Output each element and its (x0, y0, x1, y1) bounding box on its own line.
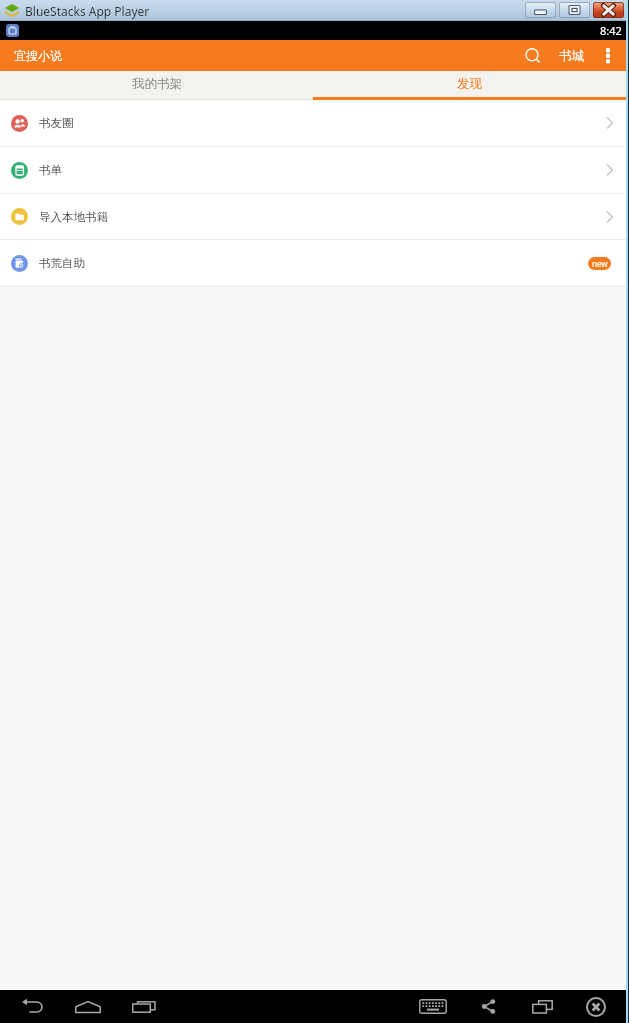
button[interactable] (10, 990, 54, 1023)
button[interactable]: 书荒自助 (0, 240, 626, 287)
button[interactable]: 书友圈 (0, 100, 626, 147)
button[interactable] (412, 990, 454, 1023)
button[interactable] (66, 990, 110, 1023)
button[interactable]: 发现 (313, 71, 626, 97)
button[interactable]: 书单 (0, 147, 626, 194)
staticText: 书友圈 (39, 116, 74, 130)
staticText: new (592, 258, 608, 269)
staticText: 书城 (559, 48, 584, 64)
button[interactable] (522, 990, 562, 1023)
button[interactable] (517, 40, 549, 71)
staticText: 我的书架 (132, 76, 182, 92)
staticText: BlueStacks App Player (25, 3, 150, 19)
staticText: 导入本地书籍 (39, 210, 108, 224)
button[interactable] (590, 40, 626, 71)
staticText: 宜搜小说 (14, 48, 62, 63)
button[interactable] (559, 2, 590, 18)
button[interactable] (576, 990, 616, 1023)
button[interactable] (122, 990, 166, 1023)
staticText: 书荒自助 (39, 256, 85, 270)
staticText: 8:42 (600, 23, 622, 38)
button[interactable]: 我的书架 (0, 71, 313, 97)
staticText: 书单 (39, 163, 62, 177)
button[interactable] (525, 2, 556, 18)
button[interactable]: 书城 (549, 40, 590, 71)
button[interactable]: 导入本地书籍 (0, 194, 626, 240)
button[interactable] (593, 2, 624, 18)
button[interactable] (468, 990, 508, 1023)
staticText: 发现 (457, 76, 482, 92)
